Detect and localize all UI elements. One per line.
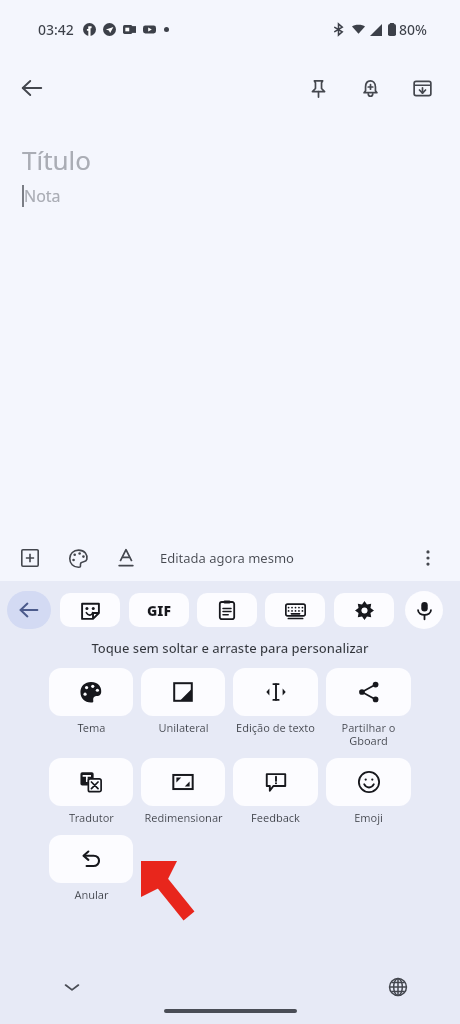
- button[interactable]: Partilhar o Gboard: [322, 668, 415, 748]
- button[interactable]: Edição de texto: [229, 668, 322, 735]
- button[interactable]: Keyboard tool: [334, 593, 394, 627]
- button[interactable]: Keyboard tool: [197, 593, 257, 627]
- button[interactable]: Unilateral: [137, 668, 229, 735]
- staticText: Tradutor: [69, 810, 114, 825]
- button[interactable]: Back: [7, 591, 51, 629]
- button[interactable]: Change language: [378, 967, 418, 1007]
- button[interactable]: Reminder: [348, 66, 392, 110]
- staticText: Edição de texto: [236, 720, 315, 735]
- button[interactable]: Emoji: [322, 758, 415, 825]
- staticText: Editada agora mesmo: [160, 549, 294, 567]
- staticText: Redimensionar: [144, 810, 223, 825]
- button[interactable]: Archive: [400, 66, 444, 110]
- button[interactable]: Anular: [45, 835, 137, 902]
- button[interactable]: Feedback: [229, 758, 322, 825]
- button[interactable]: Back: [10, 66, 54, 110]
- button[interactable]: Formatting: [106, 538, 146, 578]
- staticText: GIF: [147, 601, 172, 620]
- staticText: Feedback: [251, 810, 300, 825]
- button[interactable]: Keyboard tool: [60, 593, 120, 627]
- staticText: Tema: [77, 720, 106, 735]
- staticText: Emoji: [354, 810, 383, 825]
- staticText: Unilateral: [158, 720, 209, 735]
- staticText: Toque sem soltar e arraste para personal…: [0, 639, 460, 657]
- staticText: Nota: [24, 185, 61, 207]
- button[interactable]: Redimensionar: [137, 758, 229, 825]
- button[interactable]: Keyboard tool: [265, 593, 325, 627]
- button[interactable]: Tradutor: [45, 758, 137, 825]
- button[interactable]: Tema: [45, 668, 137, 735]
- staticText: Título: [22, 142, 92, 177]
- button[interactable]: Add: [10, 538, 50, 578]
- staticText: 03:42: [38, 20, 74, 39]
- button[interactable]: More options: [408, 538, 448, 578]
- staticText: 80%: [399, 20, 427, 39]
- staticText: Partilhar o Gboard: [341, 720, 396, 748]
- button[interactable]: Voice input: [405, 591, 443, 629]
- button[interactable]: Background colour: [58, 538, 98, 578]
- button[interactable]: Keyboard tool: [129, 593, 189, 627]
- button[interactable]: Pin: [296, 66, 340, 110]
- button[interactable]: Hide keyboard: [52, 967, 92, 1007]
- staticText: Anular: [74, 887, 109, 902]
